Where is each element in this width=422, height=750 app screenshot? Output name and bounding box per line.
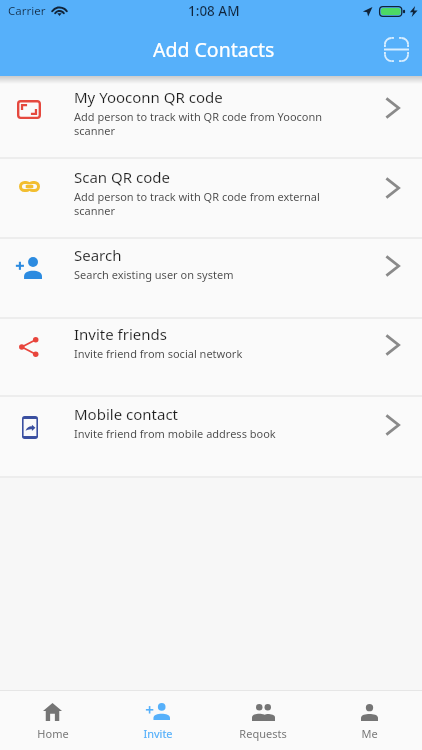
staticText: Invite xyxy=(143,726,173,741)
staticText: 1:08 AM xyxy=(188,2,240,20)
staticText: Requests xyxy=(239,726,287,741)
button[interactable]: Scan QR code xyxy=(0,159,422,237)
staticText: Invite friend from mobile address book xyxy=(74,426,276,441)
button[interactable]: Mobile contact xyxy=(0,397,422,476)
button[interactable]: Search xyxy=(0,239,422,317)
staticText: Search existing user on system xyxy=(74,267,234,282)
staticText: Add person to track with QR code from Yo… xyxy=(74,109,348,138)
button[interactable]: Me xyxy=(316,691,422,750)
button[interactable]: Requests xyxy=(210,691,316,750)
staticText: Search xyxy=(74,245,122,265)
button[interactable]: Scan xyxy=(376,29,416,69)
staticText: Me xyxy=(361,726,378,741)
button[interactable]: Invite friends xyxy=(0,319,422,395)
button[interactable]: My Yooconn QR code xyxy=(0,76,422,157)
button[interactable]: Home xyxy=(0,691,105,750)
staticText: Invite friend from social network xyxy=(74,346,243,361)
staticText: My Yooconn QR code xyxy=(74,87,223,107)
staticText: Scan QR code xyxy=(74,167,170,187)
staticText: Add Contacts xyxy=(153,36,275,63)
staticText: Add person to track with QR code from ex… xyxy=(74,189,348,218)
staticText: Carrier xyxy=(8,3,46,19)
button[interactable]: Invite xyxy=(105,691,210,750)
staticText: Mobile contact xyxy=(74,404,178,424)
staticText: Home xyxy=(37,726,69,741)
staticText: Invite friends xyxy=(74,324,167,344)
